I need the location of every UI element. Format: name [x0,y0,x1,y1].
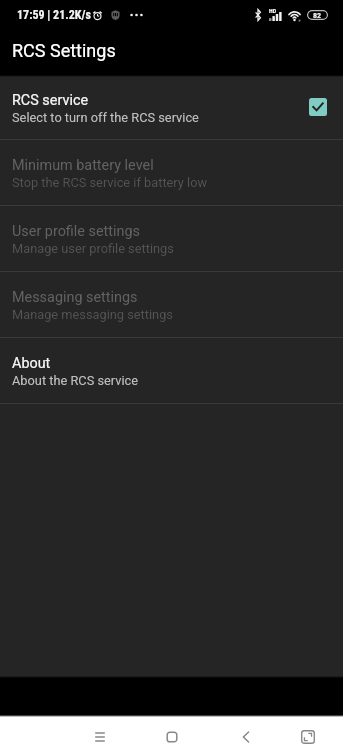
button[interactable]: User profile settings [0,206,343,271]
button[interactable]: Screenshot [290,719,326,753]
staticText: RCS service [12,92,89,109]
staticText: Messaging settings [12,289,138,306]
button[interactable]: Menu [82,719,118,753]
button[interactable]: RCS service checkbox [309,98,327,116]
staticText: 17:59 | 21.2K/s [17,8,91,22]
button[interactable]: Minimum battery level [0,140,343,205]
staticText: Manage user profile settings [12,241,174,256]
staticText: Select to turn off the RCS service [12,110,199,125]
staticText: 82 [313,11,322,20]
staticText: User profile settings [12,223,140,240]
staticText: Minimum battery level [12,157,154,174]
button[interactable]: Back [228,719,264,753]
staticText: About the RCS service [12,373,139,388]
button[interactable]: Home [154,719,190,753]
button[interactable]: RCS service [0,75,343,139]
staticText: HD [269,7,277,14]
button[interactable]: Messaging settings [0,272,343,337]
staticText: Manage messaging settings [12,307,173,322]
staticText: Stop the RCS service if battery low [12,175,208,190]
staticText: RCS Settings [12,40,116,61]
button[interactable]: About [0,338,343,403]
staticText: About [12,355,51,372]
